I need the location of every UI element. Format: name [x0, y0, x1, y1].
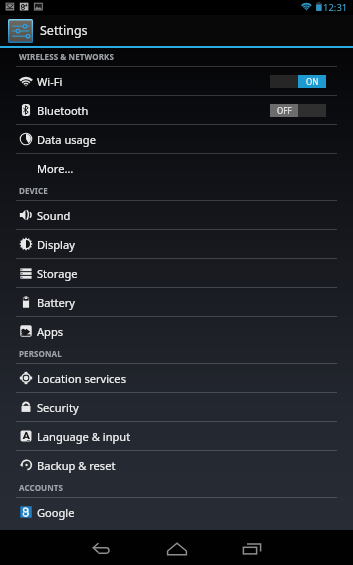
- button[interactable]: OFF: [270, 104, 326, 117]
- staticText: Bluetooth: [37, 103, 89, 118]
- staticText: ON: [306, 76, 319, 87]
- staticText: ACCOUNTS: [19, 482, 64, 493]
- staticText: Apps: [37, 324, 64, 339]
- button[interactable]: Back: [64, 530, 139, 565]
- button[interactable]: Security: [0, 393, 353, 422]
- button[interactable]: Backup & reset: [0, 451, 353, 479]
- button[interactable]: Settings app icon: [8, 19, 33, 43]
- button[interactable]: Location services: [0, 364, 353, 393]
- staticText: Wi-Fi: [37, 74, 63, 89]
- button[interactable]: Storage: [0, 259, 353, 288]
- button[interactable]: Recent apps: [214, 530, 289, 565]
- staticText: Security: [37, 400, 79, 415]
- staticText: Location services: [37, 371, 126, 386]
- staticText: Battery: [37, 295, 75, 310]
- button[interactable]: Wi-Fi: [0, 67, 353, 96]
- staticText: Language & input: [37, 429, 131, 444]
- staticText: Sound: [37, 208, 71, 223]
- staticText: Storage: [37, 266, 78, 281]
- button[interactable]: Home: [139, 530, 214, 565]
- staticText: Settings: [40, 22, 88, 39]
- staticText: 12:31: [323, 1, 348, 14]
- staticText: Google: [37, 505, 75, 520]
- staticText: OFF: [277, 105, 292, 116]
- staticText: Backup & reset: [37, 458, 116, 473]
- button[interactable]: Google: [0, 498, 353, 526]
- staticText: Display: [37, 237, 75, 252]
- staticText: DEVICE: [19, 185, 48, 196]
- button[interactable]: More…: [0, 154, 353, 182]
- button[interactable]: Sound: [0, 201, 353, 230]
- button[interactable]: ON: [270, 75, 326, 88]
- staticText: Data usage: [37, 132, 96, 147]
- button[interactable]: Language & input: [0, 422, 353, 451]
- staticText: More…: [37, 161, 74, 176]
- staticText: WIRELESS & NETWORKS: [19, 51, 114, 62]
- staticText: PERSONAL: [19, 348, 62, 359]
- button[interactable]: Battery: [0, 288, 353, 317]
- button[interactable]: Data usage: [0, 125, 353, 154]
- button[interactable]: Apps: [0, 317, 353, 345]
- button[interactable]: Display: [0, 230, 353, 259]
- button[interactable]: Bluetooth: [0, 96, 353, 125]
